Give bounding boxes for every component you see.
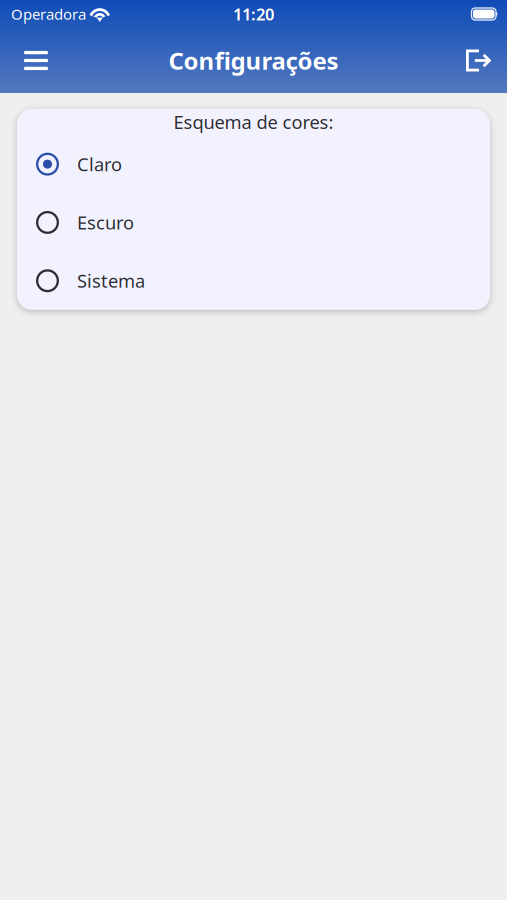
button[interactable]: Escuro [17,193,490,252]
button[interactable]: Sistema [17,252,490,310]
staticText: Esquema de cores: [173,110,333,134]
button[interactable]: Claro [17,135,490,193]
staticText: Claro [77,152,122,177]
staticText: Escuro [77,210,134,235]
staticText: 11:20 [233,3,274,25]
button[interactable]: Menu [12,39,60,82]
staticText: Operadora [11,4,86,24]
button[interactable]: Sair [453,39,504,81]
staticText: Configurações [168,45,338,76]
staticText: Sistema [77,268,145,293]
